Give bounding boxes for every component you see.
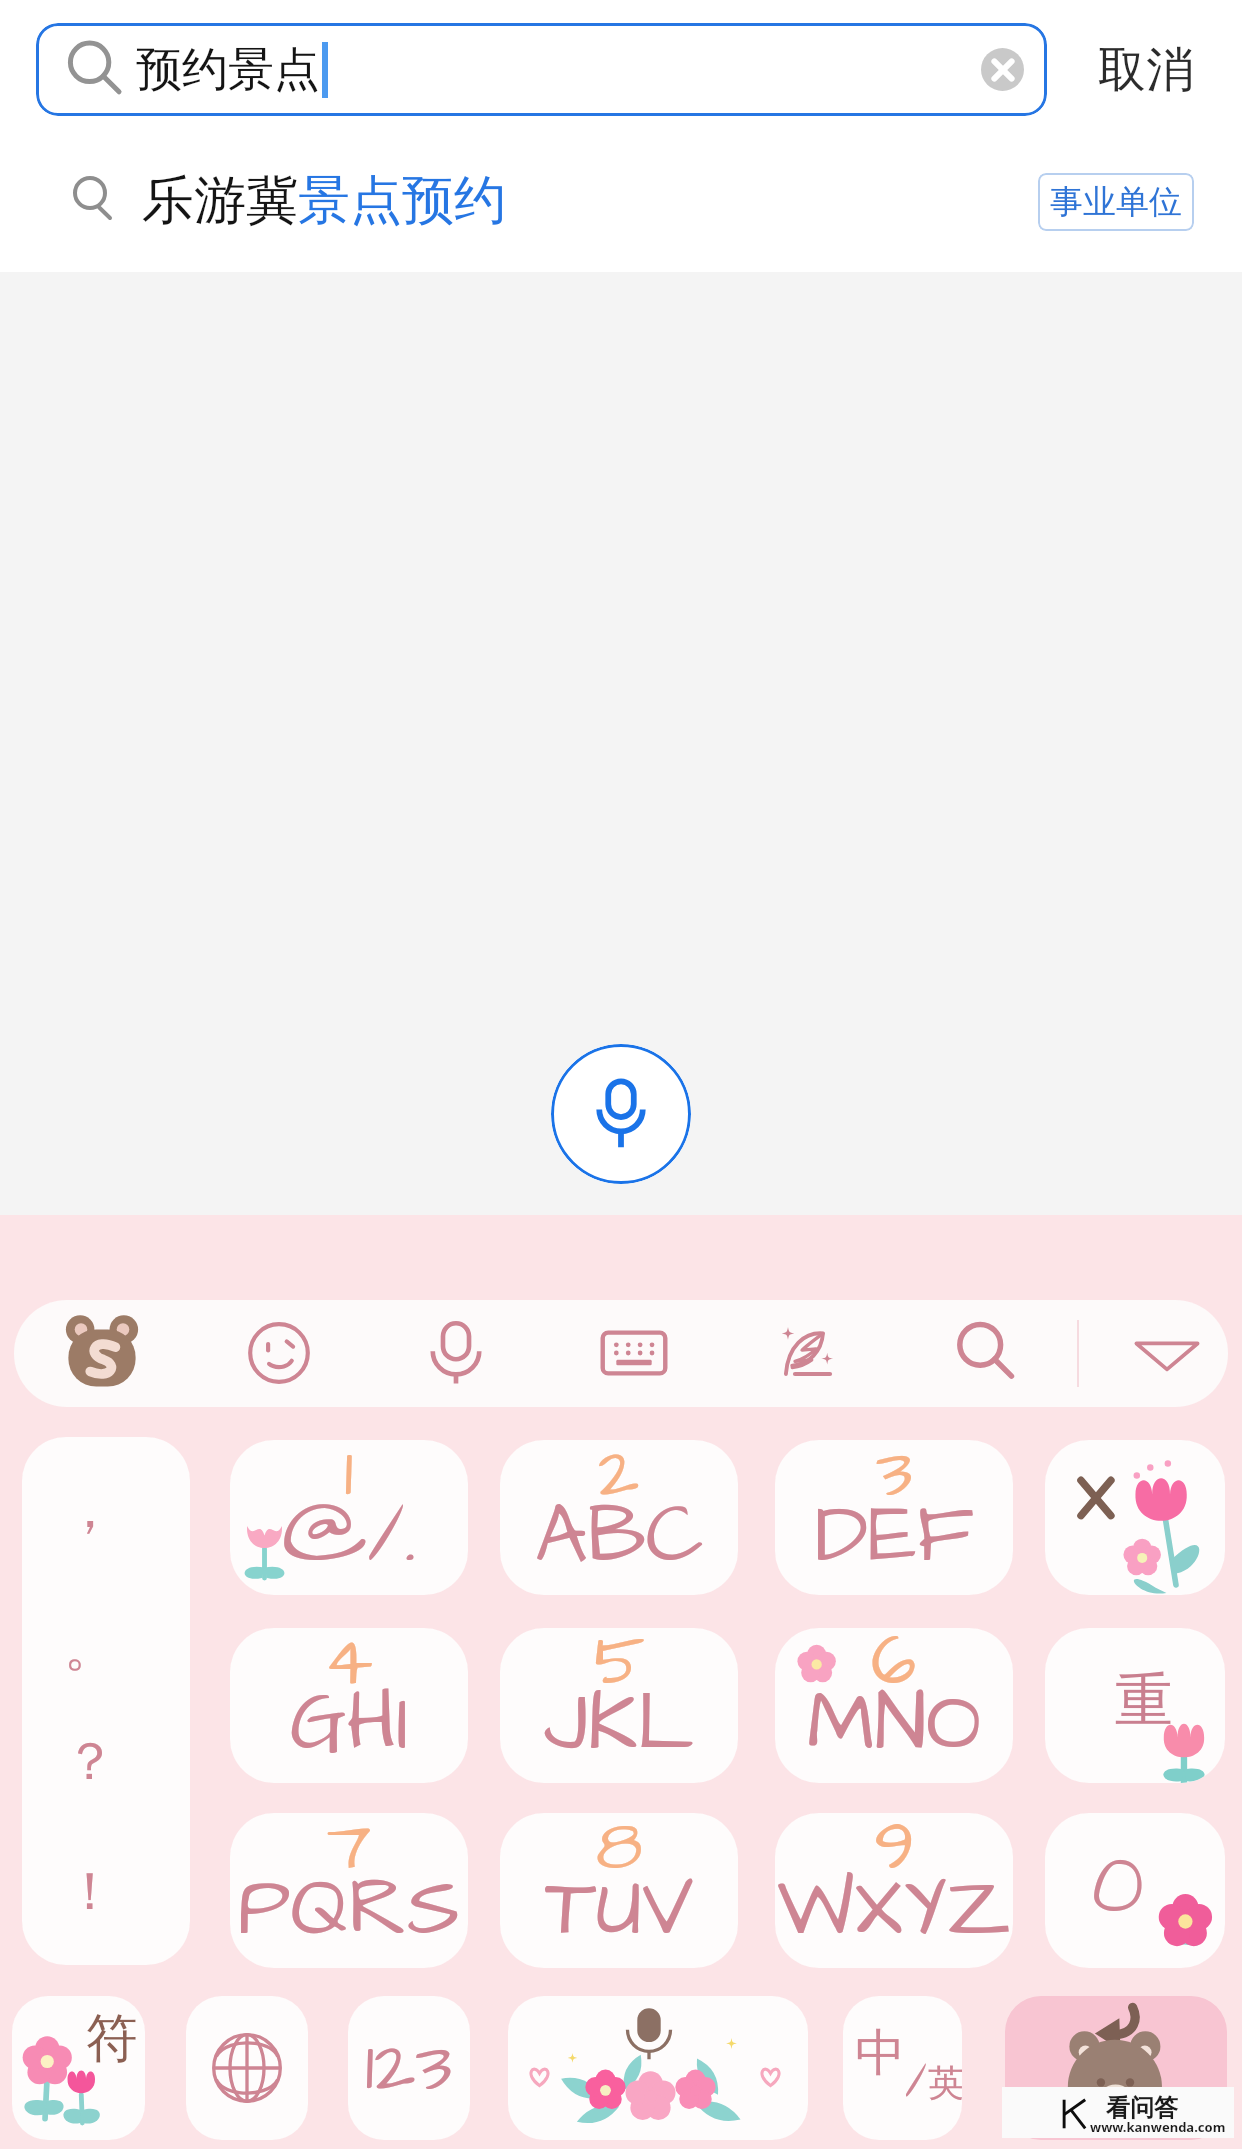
staticText: DEF	[815, 1479, 974, 1593]
button[interactable]: Keyboard layout	[590, 1309, 678, 1397]
staticText: 4	[324, 1628, 374, 1712]
button[interactable]: 5	[500, 1628, 738, 1783]
button[interactable]: 0	[1045, 1813, 1225, 1968]
staticText: ABC	[535, 1479, 704, 1593]
button[interactable]: Handwriting	[765, 1309, 853, 1397]
staticText: JKL	[544, 1667, 694, 1781]
button[interactable]: Sogou logo	[58, 1309, 146, 1397]
button[interactable]: 取消	[1098, 23, 1194, 116]
button[interactable]: 预约景点	[36, 23, 1047, 116]
staticText: 取消	[1098, 40, 1194, 100]
button[interactable]: Enter	[1005, 1996, 1227, 2140]
button[interactable]: 123	[348, 1996, 470, 2140]
staticText: @/.	[282, 1479, 417, 1593]
button[interactable]: 重	[1045, 1628, 1225, 1783]
button[interactable]: Delete	[1045, 1440, 1225, 1595]
staticText: 重	[1115, 1664, 1173, 1737]
staticText: ！	[64, 1859, 116, 1925]
staticText: TUV	[545, 1852, 694, 1966]
button[interactable]: 中	[843, 1996, 962, 2140]
staticText: 。	[64, 1615, 116, 1681]
staticText: /	[905, 2050, 927, 2117]
button[interactable]: 3	[775, 1440, 1013, 1595]
button[interactable]: 9	[775, 1813, 1013, 1968]
staticText: 事业单位	[1050, 181, 1182, 223]
staticText: GHI	[290, 1667, 409, 1781]
staticText: 2	[598, 1440, 640, 1524]
staticText: 123	[365, 2018, 453, 2118]
button[interactable]: 6	[775, 1628, 1013, 1783]
staticText: 3	[876, 1440, 913, 1524]
staticText: MNO	[807, 1667, 982, 1781]
button[interactable]: 8	[500, 1813, 738, 1968]
staticText: 6	[871, 1628, 917, 1712]
staticText: www.kanwenda.com	[1090, 2118, 1226, 2136]
staticText: 乐游冀景点预约	[142, 168, 506, 234]
staticText: ？	[64, 1729, 116, 1795]
staticText: 看问答	[1106, 2093, 1178, 2123]
staticText: 中	[855, 2022, 905, 2085]
staticText: 9	[874, 1813, 915, 1897]
button[interactable]: Search	[943, 1309, 1031, 1397]
button[interactable]: 事业单位	[1050, 181, 1182, 223]
staticText: PQRS	[238, 1852, 460, 1966]
button[interactable]: 1	[230, 1440, 468, 1595]
staticText: ，	[64, 1477, 116, 1543]
button[interactable]: Hide keyboard	[1123, 1309, 1211, 1397]
staticText: 7	[327, 1813, 372, 1897]
staticText: 1	[344, 1440, 354, 1524]
button[interactable]: 7	[230, 1813, 468, 1968]
staticText: WXYZ	[777, 1852, 1012, 1966]
button[interactable]: 4	[230, 1628, 468, 1783]
staticText: 0	[1091, 1828, 1144, 1945]
button[interactable]: Clear text	[981, 48, 1024, 91]
button[interactable]: Voice input	[551, 1044, 691, 1184]
staticText: 英	[928, 2060, 962, 2105]
button[interactable]: 2	[500, 1440, 738, 1595]
button[interactable]: Voice input	[412, 1309, 500, 1397]
button[interactable]: 符	[12, 1996, 145, 2140]
button[interactable]: Space, voice input	[508, 1996, 808, 2140]
button[interactable]: Emoji	[235, 1309, 323, 1397]
staticText: 符	[86, 2006, 138, 2072]
button[interactable]: 乐游冀景点预约	[0, 116, 1242, 272]
staticText: 5	[594, 1628, 645, 1712]
button[interactable]: Switch language	[186, 1996, 308, 2140]
staticText: 8	[596, 1813, 643, 1897]
button[interactable]: ，	[22, 1437, 190, 1965]
staticText: 预约景点	[136, 41, 320, 99]
